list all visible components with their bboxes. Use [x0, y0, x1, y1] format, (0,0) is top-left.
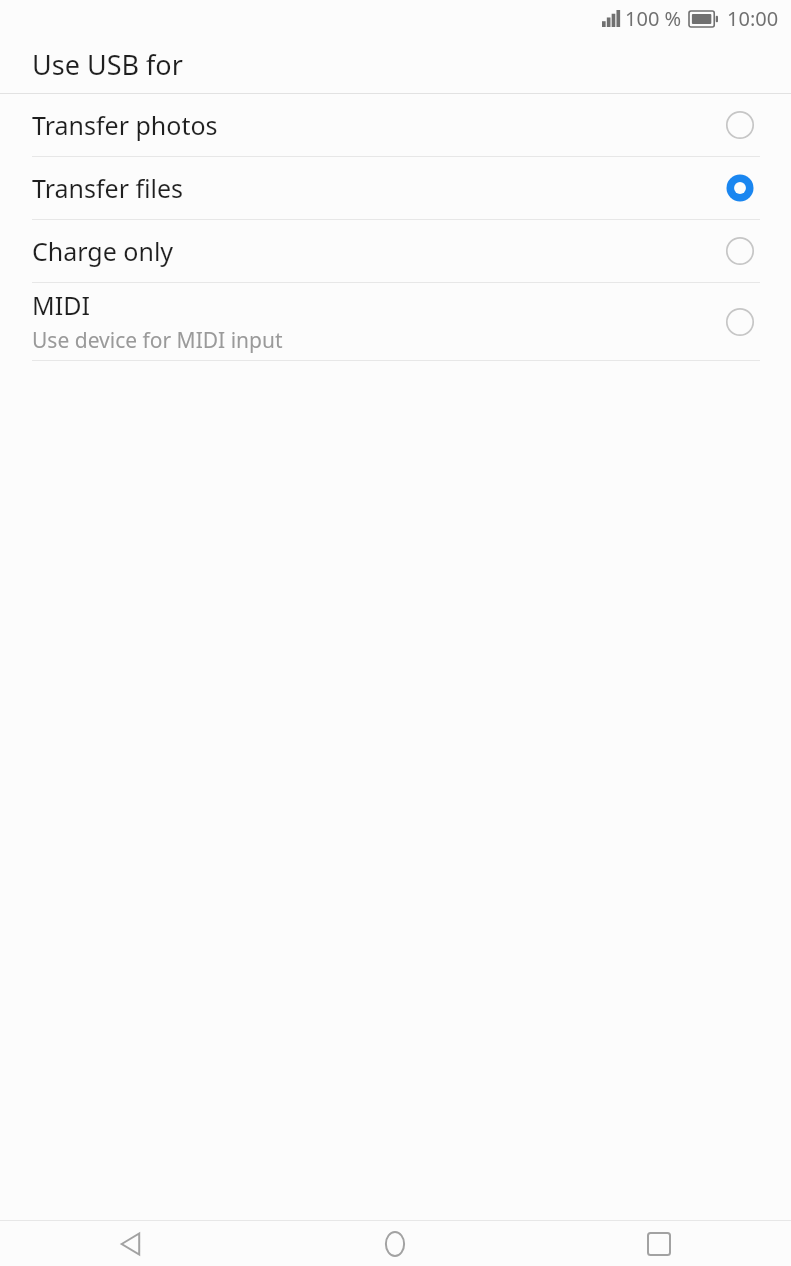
staticText: Use device for MIDI input	[32, 326, 283, 355]
button[interactable]: Transfer files	[0, 157, 791, 219]
staticText: Transfer photos	[32, 108, 218, 142]
other: Not selected	[720, 105, 760, 145]
button[interactable]: Back	[0, 1221, 263, 1266]
other: Selected	[720, 168, 760, 208]
other: Not selected	[720, 231, 760, 271]
staticText: MIDI	[32, 288, 90, 322]
button[interactable]: MIDI	[0, 283, 791, 360]
staticText: 100 %	[625, 5, 682, 32]
button[interactable]: Charge only	[0, 220, 791, 282]
button[interactable]: Transfer photos	[0, 94, 791, 156]
button[interactable]: Home	[263, 1221, 527, 1266]
staticText: Transfer files	[32, 171, 184, 205]
staticText: 10:00	[727, 5, 779, 32]
staticText: Charge only	[32, 234, 174, 268]
staticText: Use USB for	[32, 46, 183, 83]
button[interactable]: Recent apps	[527, 1221, 791, 1266]
other: Not selected	[720, 302, 760, 342]
